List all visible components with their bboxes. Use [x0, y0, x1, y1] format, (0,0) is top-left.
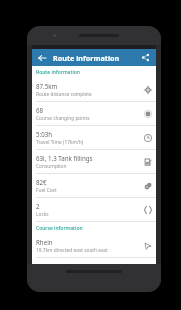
button[interactable]: 5:03h [32, 126, 156, 150]
staticText: Travel Time (17km/h) [36, 139, 84, 146]
button[interactable]: Back [35, 51, 49, 65]
button[interactable]: 63l, 1.3 Tank fillings [32, 150, 156, 174]
staticText: 5:03h [36, 130, 53, 138]
staticText: 2 [36, 202, 40, 210]
button[interactable]: 82€ [32, 174, 156, 198]
staticText: 82€ [36, 178, 47, 186]
button[interactable]: Rhein [32, 234, 156, 258]
button[interactable]: 2 [32, 198, 156, 222]
staticText: 87.5km [36, 82, 58, 90]
staticText: Route information [36, 69, 80, 76]
button[interactable]: 87.5km [32, 78, 156, 102]
staticText: Locks [36, 211, 49, 218]
button[interactable]: 68 [32, 102, 156, 126]
staticText: Course changing points [36, 115, 90, 122]
staticText: 19.7km directed east south east [36, 247, 108, 254]
staticText: 68 [36, 106, 44, 114]
staticText: Route information [53, 53, 139, 63]
staticText: 63l, 1.3 Tank fillings [36, 154, 93, 162]
staticText: Rhein [36, 238, 53, 246]
staticText: Route distance complete [36, 91, 92, 98]
staticText: Consumption [36, 163, 67, 170]
button[interactable]: Share [139, 51, 152, 64]
staticText: Course information [36, 225, 83, 232]
staticText: Fuel Cost [36, 187, 57, 194]
